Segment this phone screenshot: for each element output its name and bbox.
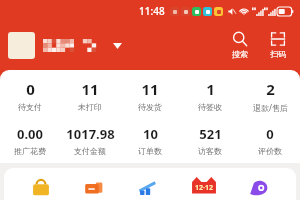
staticText: 退款/售后: [253, 102, 288, 113]
button[interactable]: 521: [180, 124, 240, 157]
staticText: 待签收: [198, 102, 222, 112]
button[interactable]: 0: [0, 78, 60, 113]
staticText: 0.00: [17, 125, 43, 143]
button[interactable]: 客服: [242, 176, 276, 198]
staticText: 11: [81, 79, 99, 99]
staticText: 订单数: [138, 146, 162, 156]
staticText: 12·12: [195, 183, 213, 193]
staticText: 待发货: [138, 102, 162, 112]
button[interactable]: 10: [120, 124, 180, 157]
button[interactable]: 0.00: [0, 124, 60, 157]
button[interactable]: Scan QR code: [266, 29, 290, 61]
button[interactable]: 2: [240, 78, 300, 114]
staticText: 2: [266, 79, 275, 99]
staticText: 10: [143, 125, 158, 143]
button[interactable]: 11: [120, 78, 180, 113]
staticText: 扫码: [270, 49, 286, 59]
button[interactable]: 1017.98: [60, 124, 120, 157]
button[interactable]: 订单: [77, 176, 111, 198]
button[interactable]: Switch shop: [41, 33, 124, 58]
button[interactable]: 数据: [131, 176, 165, 198]
staticText: 1: [206, 79, 215, 99]
staticText: 0: [266, 125, 274, 143]
staticText: 0: [26, 79, 35, 99]
button[interactable]: 0: [240, 124, 300, 157]
button[interactable]: 商品: [24, 176, 58, 198]
staticText: 搜索: [232, 49, 248, 59]
staticText: 1017.98: [66, 125, 115, 143]
staticText: 推广花费: [14, 146, 46, 156]
staticText: 未打印: [78, 102, 102, 112]
staticText: 访客数: [198, 146, 222, 156]
staticText: 支付金额: [74, 146, 106, 156]
button[interactable]: Search: [228, 29, 252, 61]
staticText: 评价数: [258, 146, 282, 156]
staticText: 待支付: [18, 102, 42, 112]
staticText: 11:48: [139, 4, 165, 18]
button[interactable]: 11: [60, 78, 120, 113]
staticText: 521: [199, 125, 222, 143]
button[interactable]: 1: [180, 78, 240, 113]
staticText: 11: [141, 79, 159, 99]
button[interactable]: 活动: [185, 176, 223, 196]
